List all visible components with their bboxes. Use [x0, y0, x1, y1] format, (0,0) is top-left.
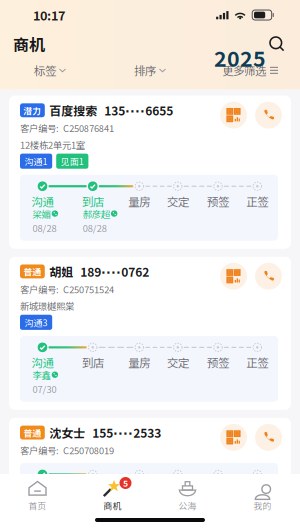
staticText: 量房 [128, 193, 150, 209]
staticText: 07/30 [32, 382, 56, 396]
staticText: 商机 [103, 499, 121, 512]
button[interactable]: 5 [75, 474, 150, 515]
staticText: 见面1 [61, 155, 84, 168]
staticText: 正签 [246, 481, 268, 498]
staticText: 普通 [23, 426, 41, 439]
staticText: 正签 [246, 193, 268, 209]
staticText: 量房 [128, 354, 150, 371]
staticText: 07/12 [32, 509, 56, 523]
staticText: 普通 [23, 265, 41, 278]
staticText: 08/28 [83, 221, 107, 235]
staticText: 标签 [34, 62, 56, 79]
staticText: 胡姐 [49, 263, 73, 280]
button[interactable]: 拨打电话 [255, 102, 282, 129]
staticText: 189∙∙∙∙0762 [80, 263, 149, 280]
button[interactable]: 扫码 [220, 102, 247, 129]
staticText: 量房 [128, 481, 150, 498]
staticText: 交定 [167, 481, 189, 498]
button[interactable]: 拨打电话 [255, 263, 282, 290]
button[interactable]: 排序 [100, 55, 200, 86]
button[interactable]: 标签 [0, 55, 100, 86]
staticText: 李鑫 [32, 368, 50, 381]
staticText: 沟通 [31, 354, 53, 371]
button[interactable]: 搜索 [262, 32, 300, 56]
button[interactable]: 我的 [225, 474, 300, 515]
button[interactable]: 拨打电话 [255, 424, 282, 451]
staticText: 王敏 [32, 495, 50, 508]
staticText: 预签 [207, 193, 229, 209]
staticText: 到店 [82, 193, 104, 209]
button[interactable]: 公海 [150, 474, 225, 515]
staticText: 客户编号: C250876841 [20, 121, 114, 135]
button[interactable]: 扫码 [220, 263, 247, 290]
button[interactable]: 首页 [0, 474, 75, 515]
button[interactable]: 扫码 [220, 424, 247, 451]
staticText: 商机 [13, 32, 45, 56]
staticText: 潜力 [23, 104, 41, 117]
staticText: 到店 [82, 354, 104, 371]
staticText: 沟通1 [25, 155, 48, 168]
staticText: 2025 [214, 42, 266, 73]
staticText: 到店 [82, 481, 104, 498]
staticText: 08/28 [32, 221, 56, 235]
staticText: 交定 [167, 354, 189, 371]
button[interactable]: 更多筛选 [200, 55, 300, 86]
staticText: 首页 [28, 499, 46, 512]
staticText: 我的 [253, 499, 271, 512]
staticText: 郝彦超 [83, 207, 110, 220]
staticText: 排序 [134, 62, 156, 79]
staticText: 5 [123, 477, 128, 489]
staticText: 沈女士 [49, 424, 85, 441]
staticText: 公海 [178, 499, 196, 512]
staticText: 梁媚 [32, 207, 50, 220]
staticText: 百度搜索 [49, 102, 97, 119]
staticText: 客户编号: C250751524 [20, 282, 114, 296]
staticText: 沟通 [31, 481, 53, 498]
staticText: 135∙∙∙∙6655 [104, 102, 173, 119]
staticText: 正签 [246, 354, 268, 371]
staticText: 12楼栋2单元1室 [20, 138, 85, 151]
staticText: 10:17 [33, 6, 65, 24]
staticText: 沟通 [31, 193, 53, 209]
staticText: 155∙∙∙∙2533 [92, 424, 161, 441]
staticText: 新城璟樾熙棠 [20, 299, 74, 312]
staticText: 更多筛选 [222, 62, 266, 79]
staticText: 交定 [167, 193, 189, 209]
staticText: 预签 [207, 354, 229, 371]
staticText: 客户编号: C250708019 [20, 443, 114, 457]
staticText: 沟通3 [25, 316, 48, 329]
